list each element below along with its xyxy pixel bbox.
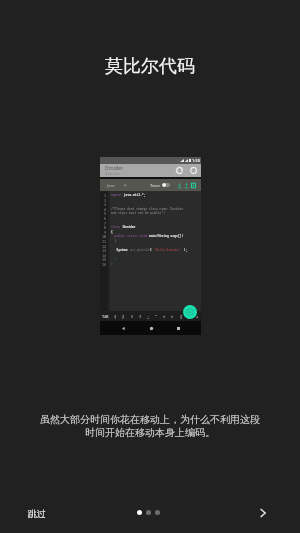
button[interactable]: Back (118, 323, 128, 333)
staticText: Main.java (105, 172, 120, 176)
staticText: Java (107, 183, 115, 188)
staticText: main(String args[]) (149, 234, 184, 238)
button[interactable]: 跳过 (20, 502, 54, 525)
staticText: ) (139, 314, 142, 319)
staticText: public static void (111, 234, 149, 238)
button[interactable]: Redo (188, 165, 199, 176)
button[interactable]: TAB (101, 314, 110, 319)
staticText: 莫比尔代码 (105, 55, 195, 78)
staticText: 14 (102, 253, 107, 258)
staticText: TAB (102, 314, 109, 319)
staticText: } (111, 262, 113, 266)
staticText: < (163, 314, 166, 319)
button[interactable]: { (113, 314, 118, 319)
staticText: 16 (102, 262, 107, 267)
staticText: 跳过 (28, 508, 46, 519)
staticText: and class must not be public*/ (111, 211, 166, 215)
staticText: > (171, 314, 174, 319)
staticText: 1:38 (192, 158, 200, 163)
button[interactable]: ; (146, 314, 151, 319)
staticText: class (111, 225, 121, 229)
staticText: 6 (104, 216, 107, 221)
staticText: ( (150, 248, 154, 252)
staticText: 11 (102, 239, 107, 244)
button[interactable]: > (170, 314, 175, 319)
staticText: .out.println (128, 248, 150, 252)
staticText: ; (147, 314, 150, 319)
button[interactable]: ) (138, 314, 143, 319)
button[interactable]: Undo (174, 165, 185, 176)
staticText: "Hello Droider" (154, 248, 182, 252)
staticText: ] (188, 314, 191, 319)
staticText: 13 (102, 248, 107, 253)
staticText: 1 (104, 193, 107, 198)
button[interactable]: Recents (173, 323, 183, 333)
staticText: import (111, 193, 122, 197)
staticText: Droider (121, 225, 136, 229)
staticText: } (111, 257, 117, 261)
staticText: 2 (104, 198, 107, 203)
staticText: System (111, 248, 128, 252)
staticText: java.util.*; (122, 193, 146, 197)
staticText: /*Please dont change class name: Droider (111, 207, 184, 211)
staticText: Trace (150, 183, 161, 188)
staticText: 12 (102, 244, 107, 249)
staticText: Droider (105, 165, 123, 172)
staticText: 9 (104, 230, 107, 235)
button[interactable]: Run (190, 182, 196, 188)
button[interactable]: } (121, 314, 126, 319)
staticText: ( (131, 314, 134, 319)
staticText: 15 (102, 257, 107, 262)
staticText: { (114, 314, 117, 319)
staticText: } (122, 314, 125, 319)
staticText: ); (182, 248, 188, 252)
button[interactable]: Run code (183, 305, 197, 319)
staticText: " (155, 314, 158, 319)
staticText: 10 (102, 234, 107, 239)
staticText: 5 (104, 211, 107, 216)
button[interactable]: " (154, 314, 159, 319)
button[interactable]: < (162, 314, 167, 319)
staticText: + (196, 314, 199, 319)
button[interactable]: + (195, 314, 200, 319)
staticText: 7 (104, 221, 107, 226)
button[interactable]: Home (146, 323, 156, 333)
staticText: 虽然大部分时间你花在移动上，为什么不利用这段时间开始在移动本身上编码。 (36, 413, 264, 439)
button[interactable]: Next (250, 500, 276, 526)
button[interactable]: Open (183, 182, 189, 188)
staticText: { (111, 239, 117, 243)
staticText: [ (180, 314, 183, 319)
button[interactable]: Save (176, 182, 182, 188)
button[interactable]: ] (187, 314, 192, 319)
staticText: { (111, 230, 113, 234)
button[interactable]: ( (130, 314, 135, 319)
staticText: 4 (104, 207, 107, 212)
button[interactable]: Trace toggle (162, 183, 170, 187)
staticText: 3 (104, 202, 107, 207)
staticText: 8 (104, 225, 107, 230)
button[interactable]: [ (179, 314, 184, 319)
